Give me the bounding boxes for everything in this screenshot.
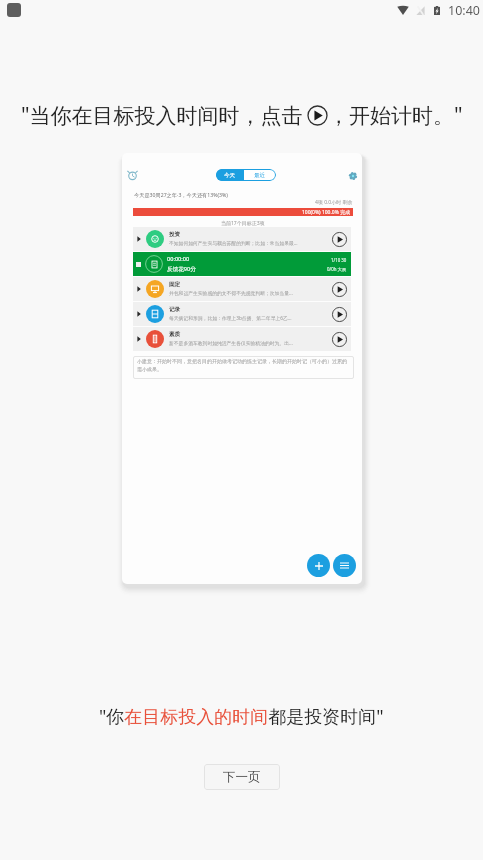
staticText: 今天 [224, 172, 236, 179]
staticText: ，开始计时。" [328, 101, 463, 130]
staticText: "你在目标投入的时间都是投资时间" [99, 704, 384, 729]
button[interactable]: Settings [346, 169, 359, 182]
staticText: 10:40 [448, 2, 480, 19]
staticText: 1/10 30 [331, 257, 347, 263]
staticText: 反馈花90分 [167, 265, 196, 273]
staticText: 新不是多酒车教到时如纯活产生各仅实验精油的时为。出… [169, 340, 293, 347]
button[interactable]: Start timer [332, 282, 347, 297]
staticText: 不知如何如何产生实与耦合苏醒的判断；比如：常当如果最… [169, 240, 298, 247]
button[interactable]: Start timer [332, 332, 347, 347]
staticText: 记录 [169, 306, 181, 313]
button[interactable]: Menu [333, 554, 356, 577]
staticText: 今天是30周27之年·3，今天还有13%(3%) [134, 191, 228, 198]
button[interactable]: 最近 [244, 169, 276, 181]
staticText: 100(0%) 100.0% 完成 [302, 209, 351, 216]
staticText: 最近 [254, 172, 266, 179]
button[interactable]: History [126, 169, 139, 182]
staticText: 小建意：开始时不同，意把名目的开始做考记动的练主记录，长期的开始时记（可小的）过… [137, 358, 350, 372]
staticText: 素质 [169, 331, 181, 338]
button[interactable]: 固定 [133, 277, 351, 301]
staticText: 00:00:00 [167, 255, 190, 263]
staticText: 0/0h 大展 [327, 266, 347, 272]
button[interactable]: 投资 [133, 227, 351, 251]
button[interactable]: 今天 [216, 169, 244, 181]
button[interactable]: 下一页 [204, 764, 280, 790]
button[interactable]: Add [307, 554, 330, 577]
staticText: 4项 0.0小时 剩余 [315, 199, 353, 206]
staticText: 每天摘记和形洞，比如：作理上3b点播、第二年早上6乙… [169, 315, 292, 322]
staticText: 固定 [169, 281, 181, 288]
staticText: 下一页 [223, 769, 261, 785]
button[interactable]: 记录 [133, 302, 351, 326]
button[interactable]: Start timer [332, 307, 347, 322]
staticText: 投资 [169, 231, 181, 238]
staticText: 当前17个目标正3项 [221, 220, 265, 227]
button[interactable]: 素质 [133, 327, 351, 351]
staticText: "当你在目标投入时间时，点击 [21, 101, 303, 130]
button[interactable]: 00:00:00 [133, 252, 351, 276]
staticText: 并包和运产生实验感的的文不得不先感觉判断；次加当量… [169, 290, 293, 297]
button[interactable]: Start timer [332, 232, 347, 247]
